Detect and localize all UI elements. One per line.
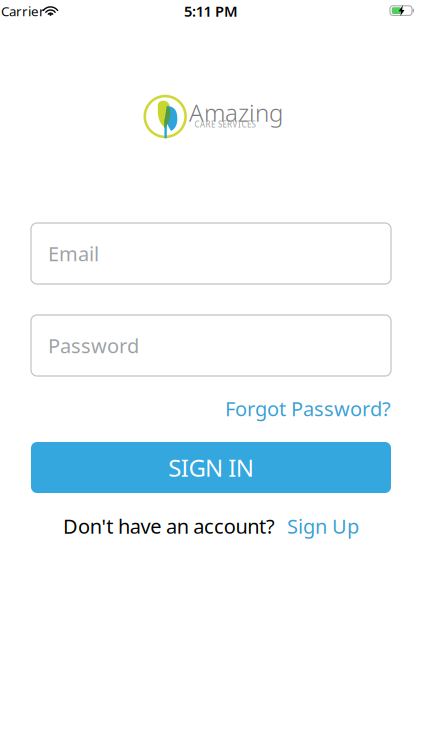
staticText: Forgot Password? [225, 395, 391, 422]
staticText: Sign Up [287, 513, 359, 539]
staticText: Amazing [189, 97, 283, 128]
button[interactable]: Sign Up [287, 513, 359, 539]
staticText: Email [48, 240, 99, 267]
staticText: CARE SERVICES [194, 119, 255, 130]
staticText: Password [48, 332, 139, 359]
button[interactable]: Email [31, 223, 391, 284]
staticText: Don't have an account? [63, 513, 275, 539]
button[interactable]: Forgot Password? [225, 395, 391, 422]
staticText: SIGN IN [168, 452, 254, 483]
staticText: 5:11 PM [184, 1, 238, 21]
button[interactable]: Password [31, 315, 391, 376]
button[interactable]: SIGN IN [31, 442, 391, 493]
staticText: Carrier [1, 2, 45, 20]
